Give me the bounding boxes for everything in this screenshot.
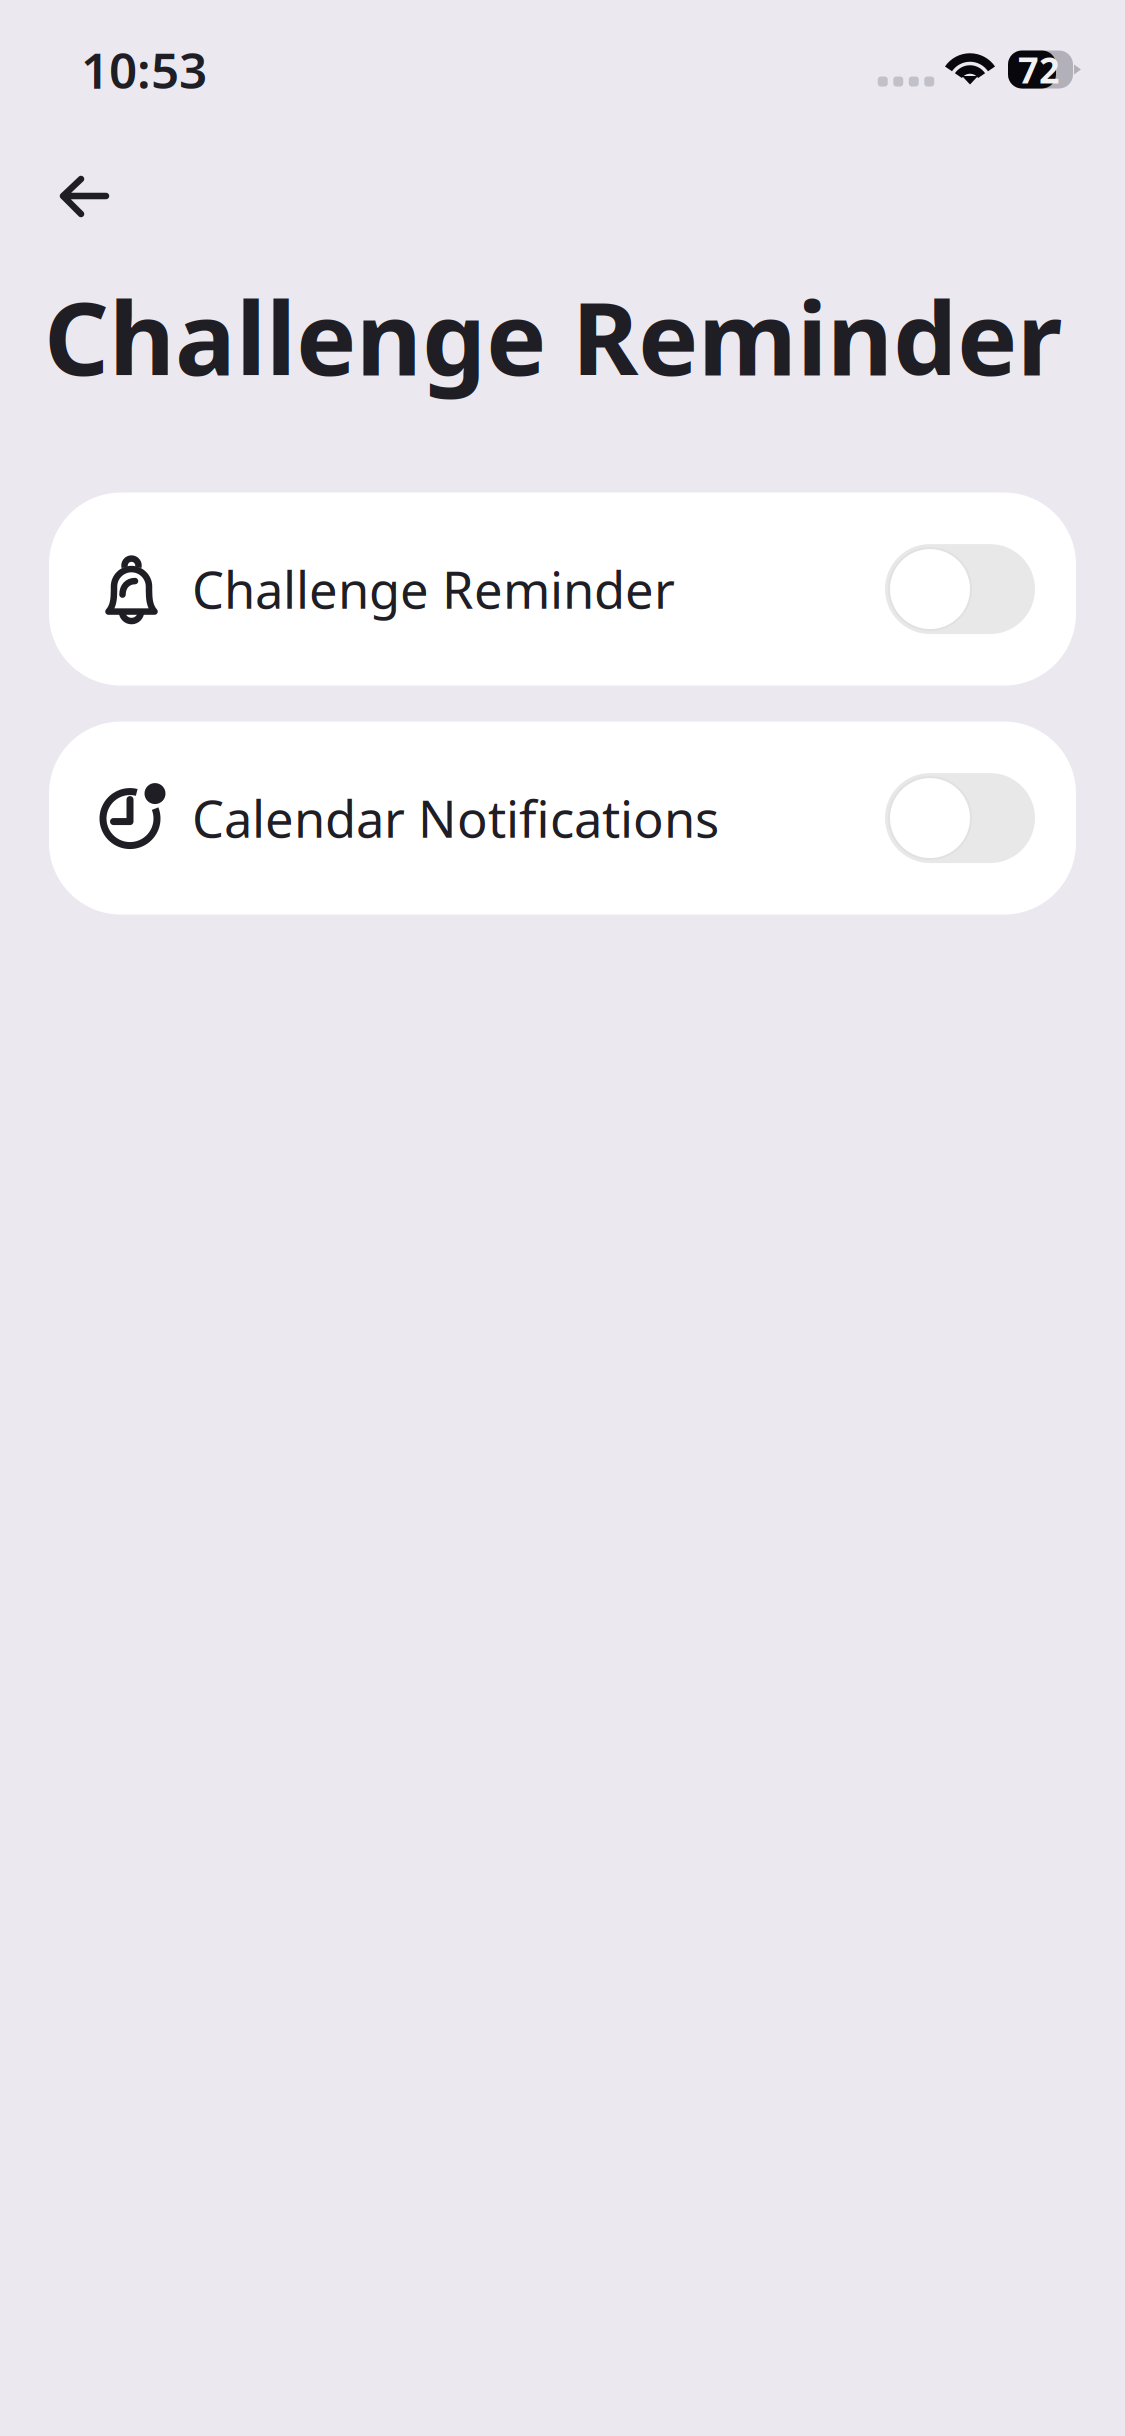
button[interactable]: Challenge Reminder switch, off (885, 544, 1035, 634)
button[interactable]: Challenge Reminder (49, 493, 1076, 686)
button[interactable]: Back (50, 159, 130, 234)
staticText: 10:53 (81, 37, 207, 102)
button[interactable]: Calendar Notifications (49, 722, 1076, 915)
staticText: Challenge Reminder (192, 555, 675, 623)
staticText: Calendar Notifications (192, 784, 719, 852)
staticText: 72 (1018, 46, 1060, 93)
staticText: Challenge Reminder (44, 269, 1062, 404)
button[interactable]: Calendar Notifications switch, off (885, 773, 1035, 863)
